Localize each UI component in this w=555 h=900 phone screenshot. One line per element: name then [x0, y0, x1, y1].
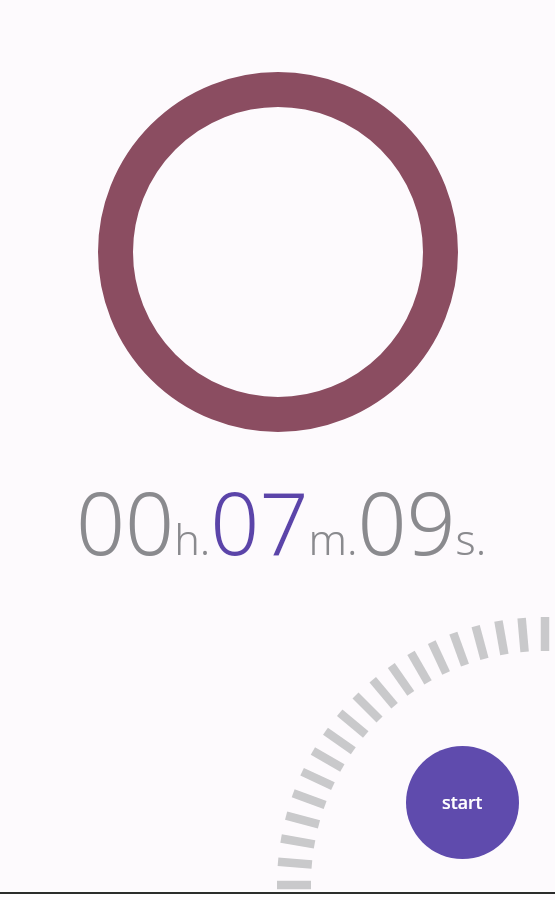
staticText: 00h.07m.09s. — [76, 463, 487, 580]
button[interactable]: start — [406, 746, 519, 859]
staticText: start — [442, 790, 483, 815]
